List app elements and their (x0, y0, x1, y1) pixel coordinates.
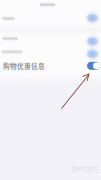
staticText: 购物优惠信息 (3, 61, 45, 71)
staticText: 软件技巧 (71, 164, 99, 174)
button[interactable]: 购物优惠信息 (0, 59, 101, 72)
